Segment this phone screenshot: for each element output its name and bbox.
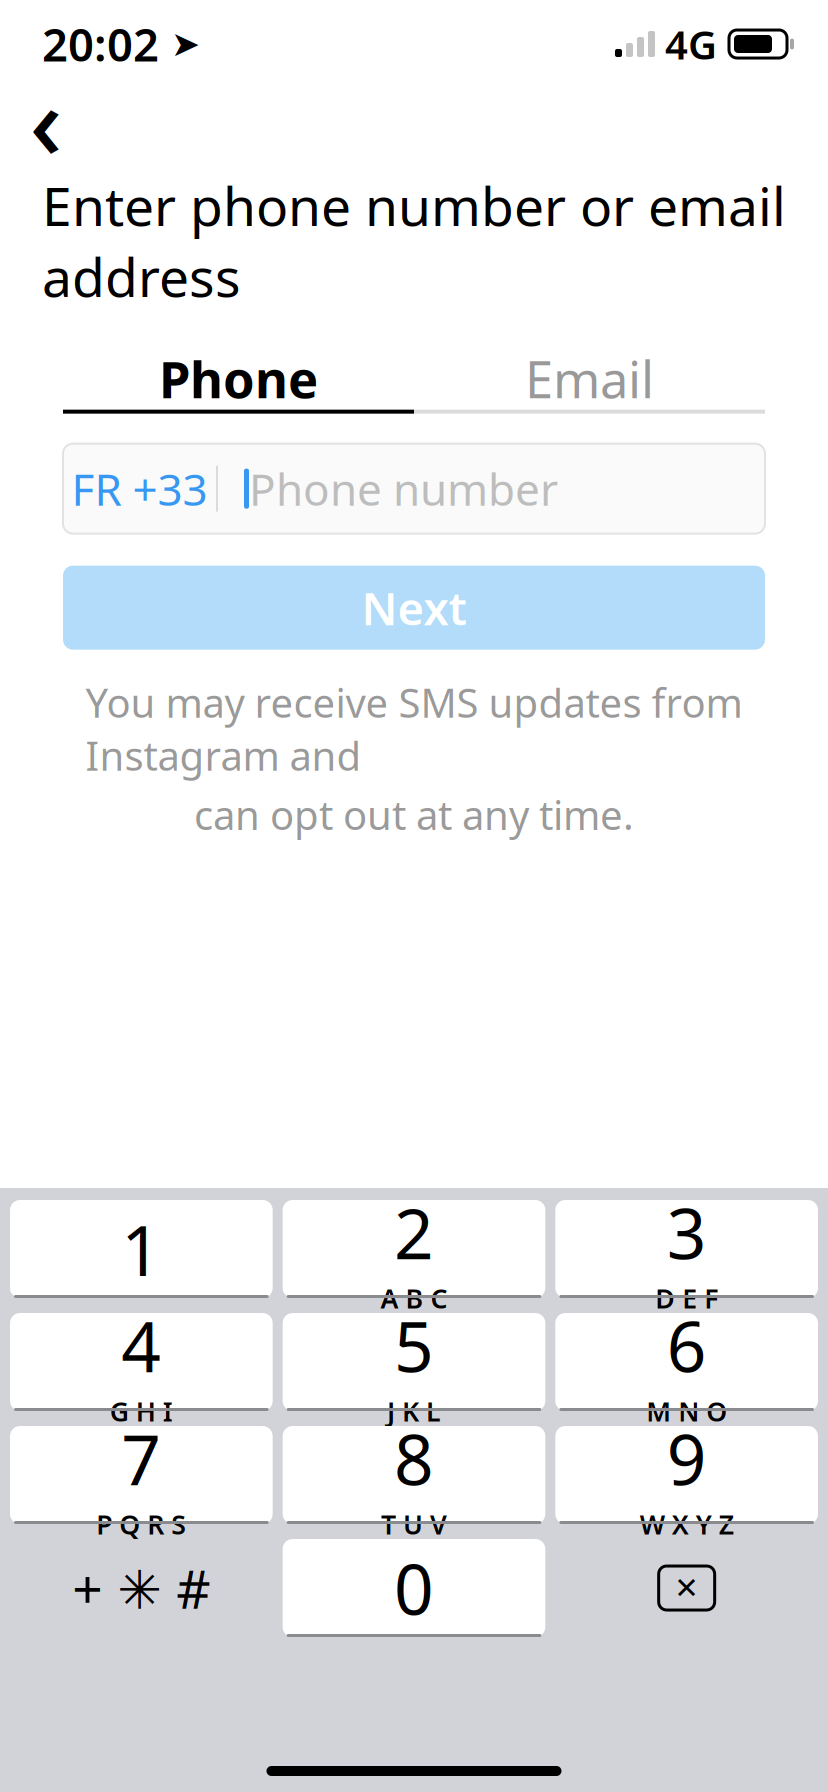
staticText: Enter phone number or email address — [42, 170, 786, 312]
button[interactable]: 9 — [555, 1426, 818, 1524]
staticText: 5 — [394, 1299, 434, 1391]
button[interactable]: Email — [414, 348, 765, 410]
staticText: You may receive SMS updates from Instagr… — [85, 676, 742, 782]
button[interactable]: Back — [8, 88, 84, 152]
staticText: Email — [525, 345, 654, 412]
button[interactable]: 1 — [10, 1200, 273, 1298]
staticText: G H I — [110, 1393, 173, 1429]
staticText: ✕ — [674, 1571, 699, 1605]
staticText: Phone number — [249, 459, 558, 518]
staticText: can opt out at any time. — [194, 788, 634, 841]
button[interactable]: 6 — [555, 1313, 818, 1411]
button[interactable]: 2 — [283, 1200, 545, 1298]
staticText: J K L — [387, 1393, 441, 1429]
staticText: P Q R S — [96, 1506, 186, 1542]
staticText: 0 — [394, 1542, 434, 1634]
staticText: M N O — [646, 1393, 727, 1429]
staticText: W X Y Z — [640, 1506, 734, 1542]
button[interactable]: 8 — [283, 1426, 545, 1524]
staticText: Phone — [159, 345, 318, 412]
button[interactable]: Phone — [63, 348, 414, 410]
staticText: ➤ — [159, 24, 200, 64]
staticText: 4 — [121, 1299, 161, 1391]
button[interactable]: Delete — [555, 1539, 818, 1637]
button[interactable]: 0 — [283, 1539, 545, 1637]
staticText: 6 — [667, 1299, 707, 1391]
staticText: 2 — [394, 1186, 434, 1278]
button[interactable]: 7 — [10, 1426, 273, 1524]
staticText: 20:02 — [42, 14, 159, 74]
button[interactable]: 5 — [283, 1313, 545, 1411]
staticText: Next — [361, 577, 466, 638]
staticText: ‹ — [29, 53, 62, 187]
staticText: A B C — [380, 1280, 447, 1316]
button[interactable]: Plus star pound — [10, 1539, 273, 1637]
staticText: 4G — [665, 17, 717, 70]
button[interactable]: FR +33 — [63, 444, 765, 534]
staticText: D E F — [655, 1280, 718, 1316]
button[interactable]: Next — [63, 566, 765, 650]
staticText: 7 — [121, 1412, 161, 1504]
staticText: 8 — [394, 1412, 434, 1504]
button[interactable]: 4 — [10, 1313, 273, 1411]
staticText: FR +33 — [71, 459, 207, 518]
staticText: + ✳ # — [72, 1553, 210, 1623]
staticText: 9 — [667, 1412, 707, 1504]
button[interactable]: 3 — [555, 1200, 818, 1298]
staticText: 3 — [667, 1186, 707, 1278]
staticText: 1 — [121, 1203, 161, 1295]
staticText: T U V — [381, 1506, 447, 1542]
